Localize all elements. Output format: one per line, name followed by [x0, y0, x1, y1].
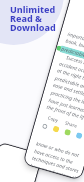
staticText: Download — [10, 21, 56, 33]
staticText: predictable and — [60, 46, 84, 62]
staticText: accident occurs and — [58, 60, 84, 80]
button[interactable]: Copy — [35, 109, 84, 146]
staticText: Read & — [10, 12, 42, 24]
staticText: Success is where — [65, 54, 84, 71]
staticText: book, but only if you — [65, 37, 84, 57]
button[interactable]: No highlight — [42, 123, 48, 129]
staticText: have just learned in — [48, 97, 84, 116]
staticText: have access to the — [33, 148, 74, 166]
staticText: have an advantage that — [30, 162, 81, 180]
staticText: the front of the life — [46, 104, 84, 122]
button[interactable]: Highlight colour — [52, 125, 60, 133]
button[interactable]: Highlight colour — [64, 129, 71, 136]
staticText: Learning — [83, 27, 84, 39]
staticText: Unlimited — [10, 3, 56, 15]
staticText: predictable and the — [54, 75, 84, 94]
staticText: practicing the lesson — [50, 89, 84, 109]
staticText: ease and settled in — [52, 82, 84, 100]
button[interactable]: Copy — [47, 114, 59, 123]
button[interactable]: Highlight colour — [75, 132, 83, 139]
button[interactable]: Share — [64, 119, 79, 129]
staticText: know or who do not — [35, 140, 80, 159]
staticText: at the right time of — [56, 67, 84, 86]
staticText: techniques and stores — [31, 155, 80, 175]
staticText: important and noble. — [67, 31, 84, 51]
